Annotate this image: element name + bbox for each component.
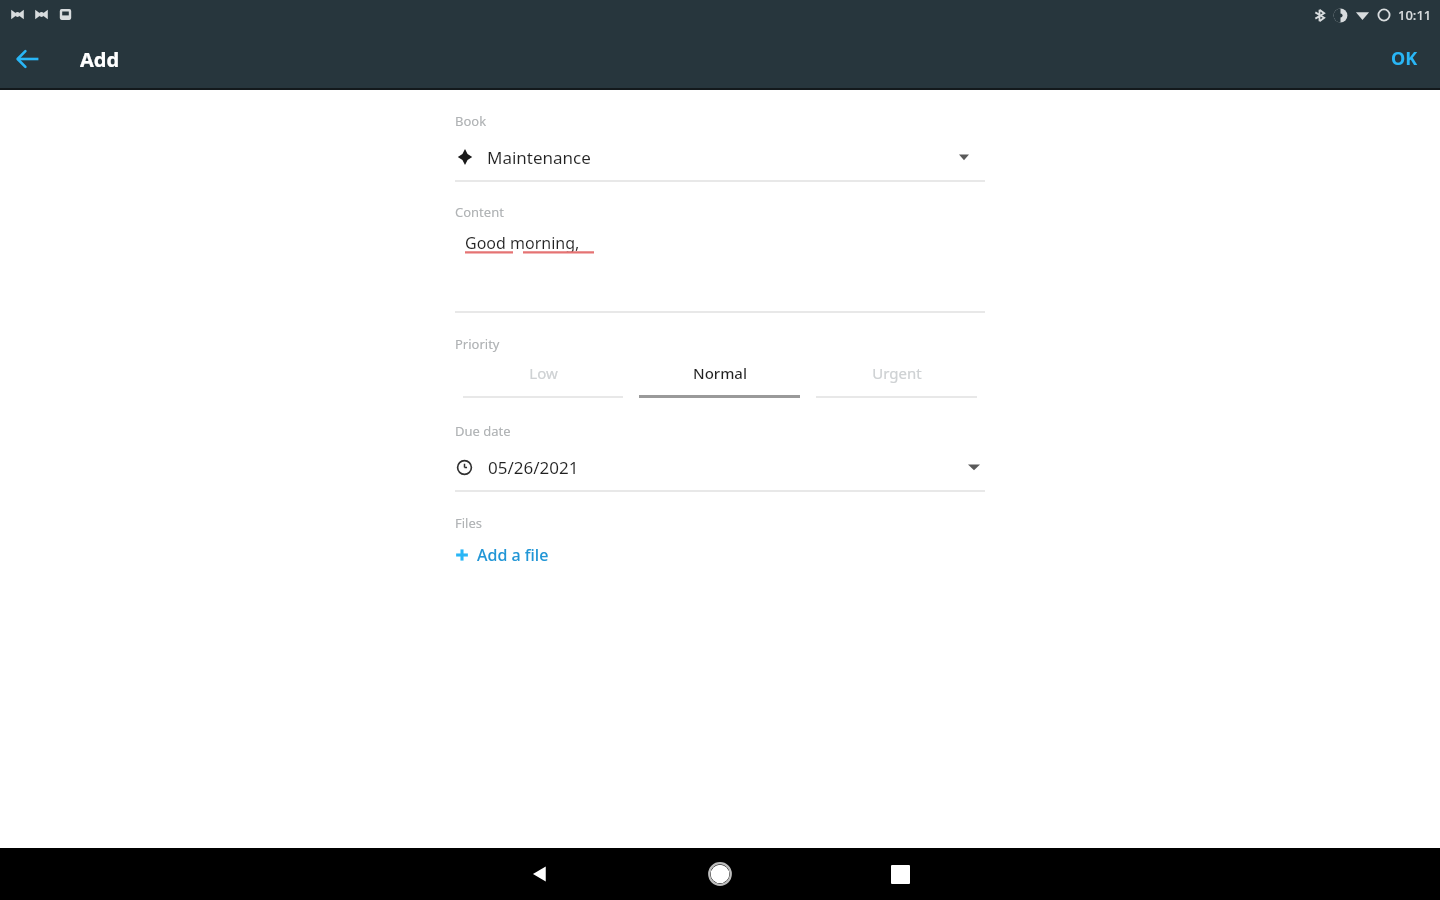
- button[interactable]: Home: [630, 848, 810, 900]
- staticText: OK: [1391, 46, 1418, 71]
- staticText: 10:11: [1398, 6, 1432, 24]
- staticText: Files: [455, 514, 483, 532]
- button[interactable]: Recent apps: [810, 848, 990, 900]
- button[interactable]: Good morning,: [455, 229, 985, 311]
- button[interactable]: Urgent: [808, 363, 985, 398]
- staticText: Due date: [455, 422, 511, 440]
- staticText: Urgent: [872, 363, 922, 383]
- staticText: Book: [455, 112, 487, 130]
- button[interactable]: OK: [1369, 29, 1440, 88]
- staticText: Maintenance: [487, 146, 591, 169]
- staticText: Add a file: [477, 544, 549, 566]
- staticText: Content: [455, 203, 504, 221]
- staticText: Low: [529, 363, 558, 383]
- staticText: 05/26/2021: [488, 456, 579, 479]
- staticText: Priority: [455, 335, 500, 353]
- button[interactable]: 05/26/2021: [455, 450, 985, 484]
- button[interactable]: Back: [0, 31, 56, 87]
- staticText: Add: [80, 46, 120, 73]
- staticText: Normal: [693, 363, 747, 383]
- button[interactable]: Normal: [631, 363, 808, 398]
- button[interactable]: Low: [455, 363, 631, 398]
- staticText: Good morning,: [465, 232, 580, 254]
- button[interactable]: Maintenance: [455, 140, 985, 174]
- button[interactable]: Add a file: [455, 540, 549, 570]
- button[interactable]: Back: [450, 848, 630, 900]
